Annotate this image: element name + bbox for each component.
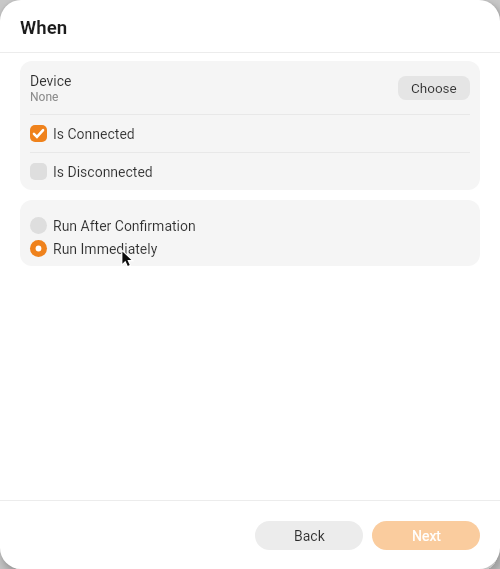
staticText: Back — [294, 528, 325, 544]
button[interactable]: Run After Confirmation — [20, 214, 480, 237]
staticText: Choose — [411, 80, 457, 96]
button[interactable]: Choose — [398, 76, 470, 100]
button[interactable]: Back — [255, 521, 363, 550]
staticText: Device — [30, 73, 72, 89]
staticText: Is Connected — [53, 126, 135, 142]
button[interactable]: Next — [372, 521, 480, 550]
staticText: None — [30, 90, 59, 104]
button[interactable]: Is Disconnected — [20, 153, 480, 190]
staticText: When — [20, 17, 68, 39]
button[interactable]: Is Connected — [20, 115, 480, 152]
staticText: Is Disconnected — [53, 164, 153, 180]
button[interactable]: Device — [20, 61, 480, 114]
staticText: Run After Confirmation — [53, 218, 196, 234]
staticText: Run Immediately — [53, 241, 158, 257]
staticText: Next — [412, 528, 441, 544]
button[interactable]: Run Immediately — [20, 237, 480, 260]
